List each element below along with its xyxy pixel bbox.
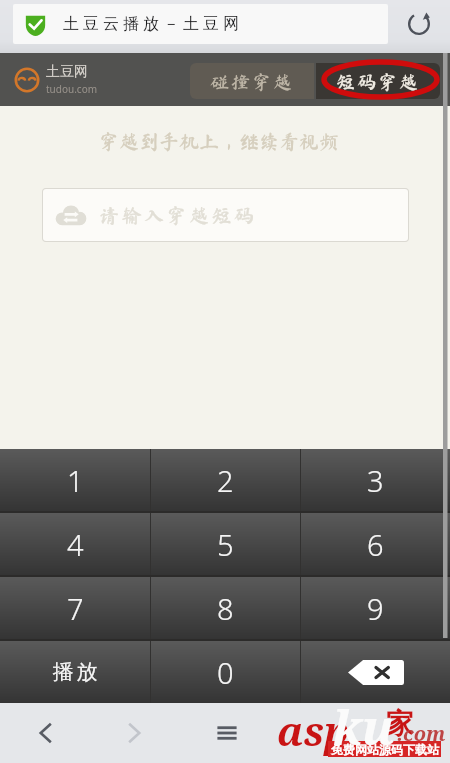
- button[interactable]: 5: [151, 513, 300, 575]
- staticText: 土豆云播放－土豆网: [61, 14, 241, 34]
- staticText: 播放: [51, 659, 99, 685]
- staticText: asp: [277, 703, 350, 757]
- button[interactable]: 1: [0, 449, 150, 511]
- button[interactable]: Menu: [205, 703, 249, 763]
- button[interactable]: 8: [151, 577, 300, 639]
- staticText: 2: [217, 461, 234, 500]
- staticText: 3: [367, 461, 384, 500]
- staticText: ku: [333, 694, 394, 754]
- staticText: 8: [217, 589, 234, 628]
- button[interactable]: 播放: [0, 641, 150, 703]
- staticText: .com: [397, 720, 446, 747]
- staticText: 免费网站源码下载站: [331, 742, 439, 757]
- staticText: 土豆网: [46, 63, 88, 81]
- staticText: 碰撞穿越: [210, 72, 295, 91]
- staticText: 请输入穿越短码: [99, 205, 257, 225]
- button[interactable]: Forward: [112, 703, 156, 763]
- button[interactable]: 7: [0, 577, 150, 639]
- button[interactable]: 短码穿越: [316, 63, 440, 99]
- staticText: 5: [217, 525, 234, 564]
- staticText: 短码穿越: [336, 72, 421, 91]
- button[interactable]: 请输入穿越短码: [43, 189, 408, 241]
- button[interactable]: 土豆网: [14, 63, 98, 96]
- staticText: 9: [367, 589, 384, 628]
- button[interactable]: 碰撞穿越: [190, 63, 314, 99]
- staticText: tudou.com: [46, 82, 98, 96]
- staticText: 6: [367, 525, 384, 564]
- button[interactable]: 2: [151, 449, 300, 511]
- button[interactable]: 0: [151, 641, 300, 703]
- button[interactable]: Delete: [301, 641, 450, 703]
- button[interactable]: 3: [301, 449, 450, 511]
- button[interactable]: Back: [24, 703, 68, 763]
- button[interactable]: 9: [301, 577, 450, 639]
- button[interactable]: 4: [0, 513, 150, 575]
- staticText: 4: [67, 525, 84, 564]
- staticText: 穿越到手机上，继续看视频: [0, 131, 444, 151]
- staticText: 7: [67, 589, 84, 628]
- button[interactable]: 6: [301, 513, 450, 575]
- other: Delete: [348, 660, 404, 685]
- button[interactable]: Refresh: [397, 2, 441, 46]
- button[interactable]: 土豆云播放－土豆网: [13, 4, 388, 44]
- staticText: 家: [386, 706, 414, 741]
- staticText: 0: [217, 653, 234, 692]
- staticText: 1: [67, 461, 84, 500]
